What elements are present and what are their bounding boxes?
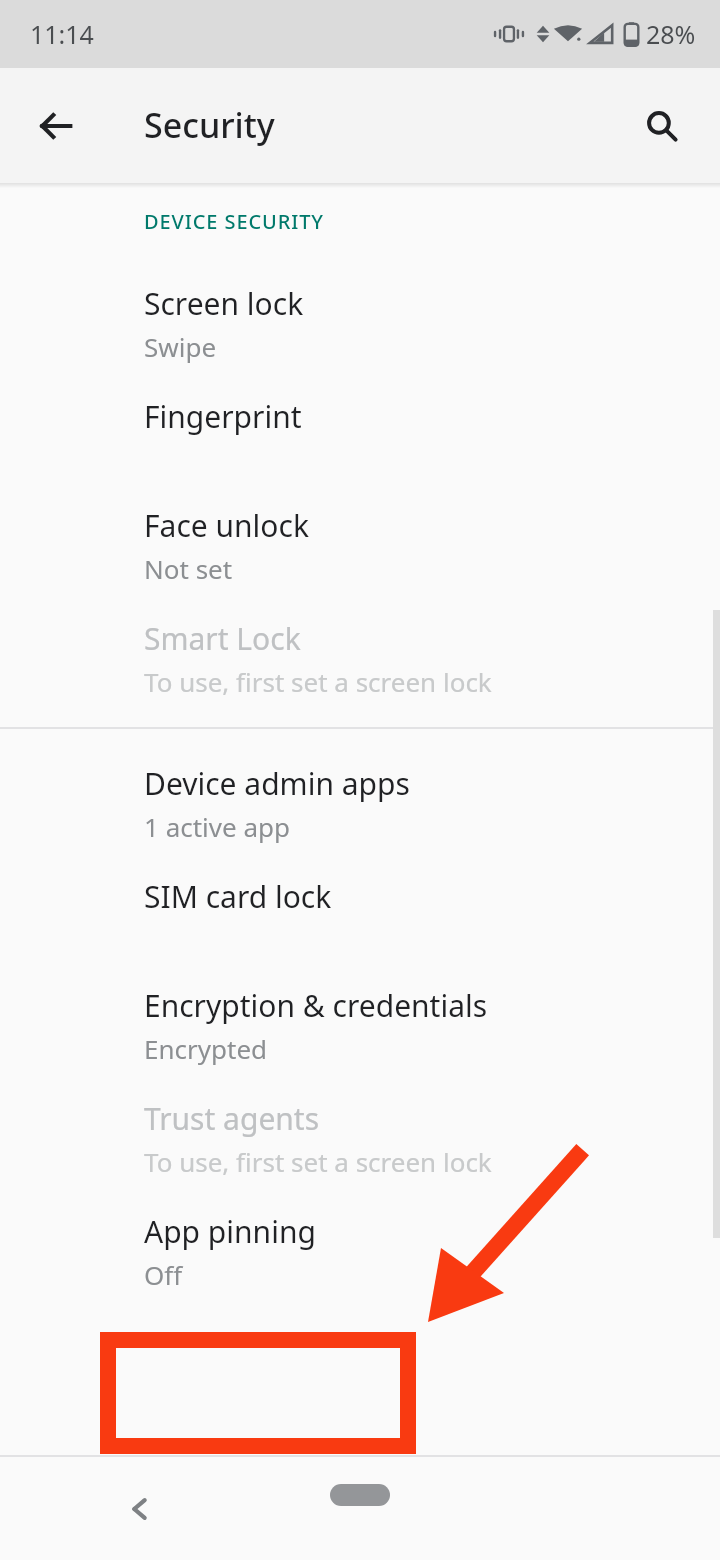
button[interactable]: Home: [330, 1484, 390, 1506]
button[interactable]: Face unlock: [0, 489, 720, 602]
button[interactable]: App pinning: [0, 1195, 720, 1308]
staticText: Smart Lock: [144, 618, 301, 659]
staticText: Security: [144, 102, 275, 148]
button[interactable]: Search: [626, 90, 698, 162]
staticText: Swipe: [144, 329, 217, 364]
staticText: 11:14: [30, 17, 94, 51]
staticText: Screen lock: [144, 283, 304, 324]
staticText: SIM card lock: [144, 876, 332, 917]
staticText: 28%: [646, 17, 696, 51]
staticText: Encryption & credentials: [144, 985, 488, 1026]
staticText: Off: [144, 1257, 183, 1292]
staticText: Trust agents: [144, 1098, 320, 1139]
button[interactable]: Fingerprint: [0, 380, 720, 489]
staticText: Fingerprint: [144, 396, 302, 437]
staticText: Encrypted: [144, 1031, 268, 1066]
staticText: Device admin apps: [144, 763, 410, 804]
button[interactable]: Device admin apps: [0, 747, 720, 860]
staticText: Not set: [144, 551, 233, 586]
staticText: App pinning: [144, 1211, 316, 1252]
staticText: 1 active app: [144, 809, 290, 844]
button[interactable]: Back: [20, 90, 92, 162]
button[interactable]: Trust agents: [0, 1082, 720, 1195]
button[interactable]: Encryption & credentials: [0, 969, 720, 1082]
button[interactable]: Back: [108, 1477, 172, 1541]
button[interactable]: Smart Lock: [0, 602, 720, 715]
staticText: To use, first set a screen lock: [144, 1144, 492, 1179]
staticText: Face unlock: [144, 505, 309, 546]
button[interactable]: Screen lock: [0, 267, 720, 380]
staticText: To use, first set a screen lock: [144, 664, 492, 699]
staticText: DEVICE SECURITY: [144, 208, 324, 235]
button[interactable]: SIM card lock: [0, 860, 720, 969]
